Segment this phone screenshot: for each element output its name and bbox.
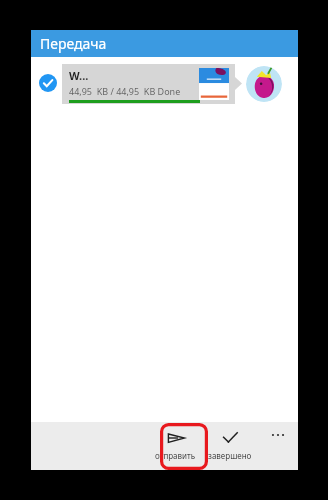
staticText: отправить <box>155 450 196 461</box>
staticText: Передача <box>40 34 107 53</box>
button[interactable]: Ещё <box>258 422 298 470</box>
staticText: W... <box>69 68 89 83</box>
button[interactable]: завершено <box>202 422 258 470</box>
button[interactable]: отправить <box>148 422 202 470</box>
staticText: завершено <box>208 450 252 461</box>
button[interactable]: W... <box>31 63 298 105</box>
staticText: 44,95 KB / 44,95 KB Done <box>69 85 181 97</box>
button[interactable]: Аватар <box>246 66 282 102</box>
